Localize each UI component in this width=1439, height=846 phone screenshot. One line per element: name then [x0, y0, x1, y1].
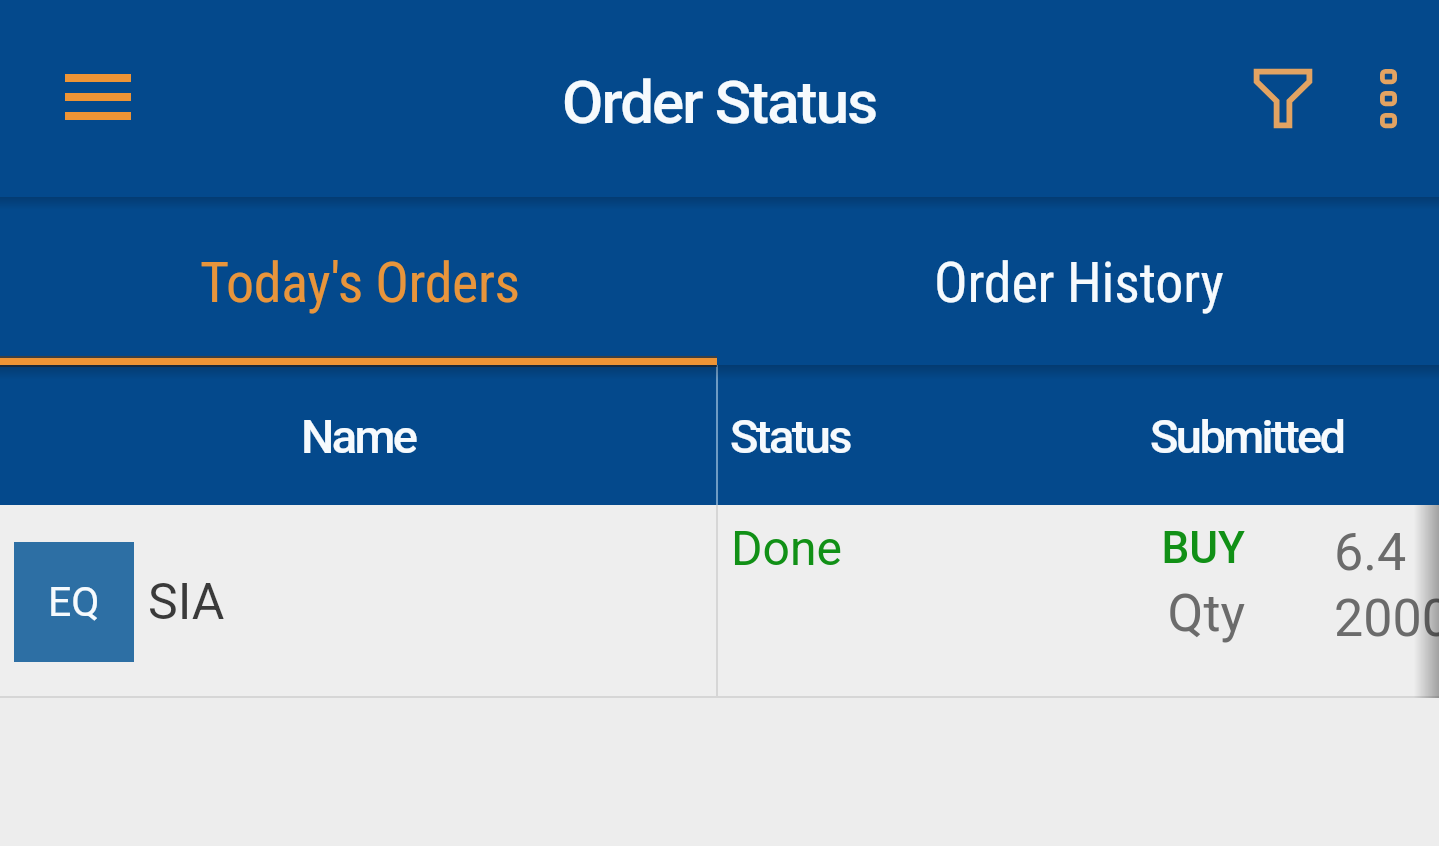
- staticText: Submitted: [1150, 409, 1344, 464]
- staticText: Order History: [934, 250, 1224, 316]
- staticText: Name: [301, 409, 416, 464]
- button[interactable]: Filter orders: [1229, 44, 1337, 152]
- staticText: Today's Orders: [200, 250, 520, 316]
- button[interactable]: EQ: [0, 505, 1439, 698]
- staticText: Status: [730, 409, 850, 464]
- staticText: 6.4: [1334, 522, 1407, 583]
- staticText: 20000: [1334, 588, 1439, 649]
- staticText: SIA: [148, 573, 225, 632]
- staticText: Order Status: [562, 67, 877, 137]
- staticText: BUY: [1045, 522, 1245, 574]
- staticText: Qty: [1045, 583, 1245, 644]
- staticText: Done: [731, 520, 842, 576]
- button[interactable]: Open navigation menu: [40, 39, 156, 155]
- staticText: EQ: [48, 578, 100, 626]
- button[interactable]: Order History: [719, 197, 1439, 365]
- button[interactable]: More options: [1334, 44, 1439, 152]
- button[interactable]: Today's Orders: [0, 197, 719, 365]
